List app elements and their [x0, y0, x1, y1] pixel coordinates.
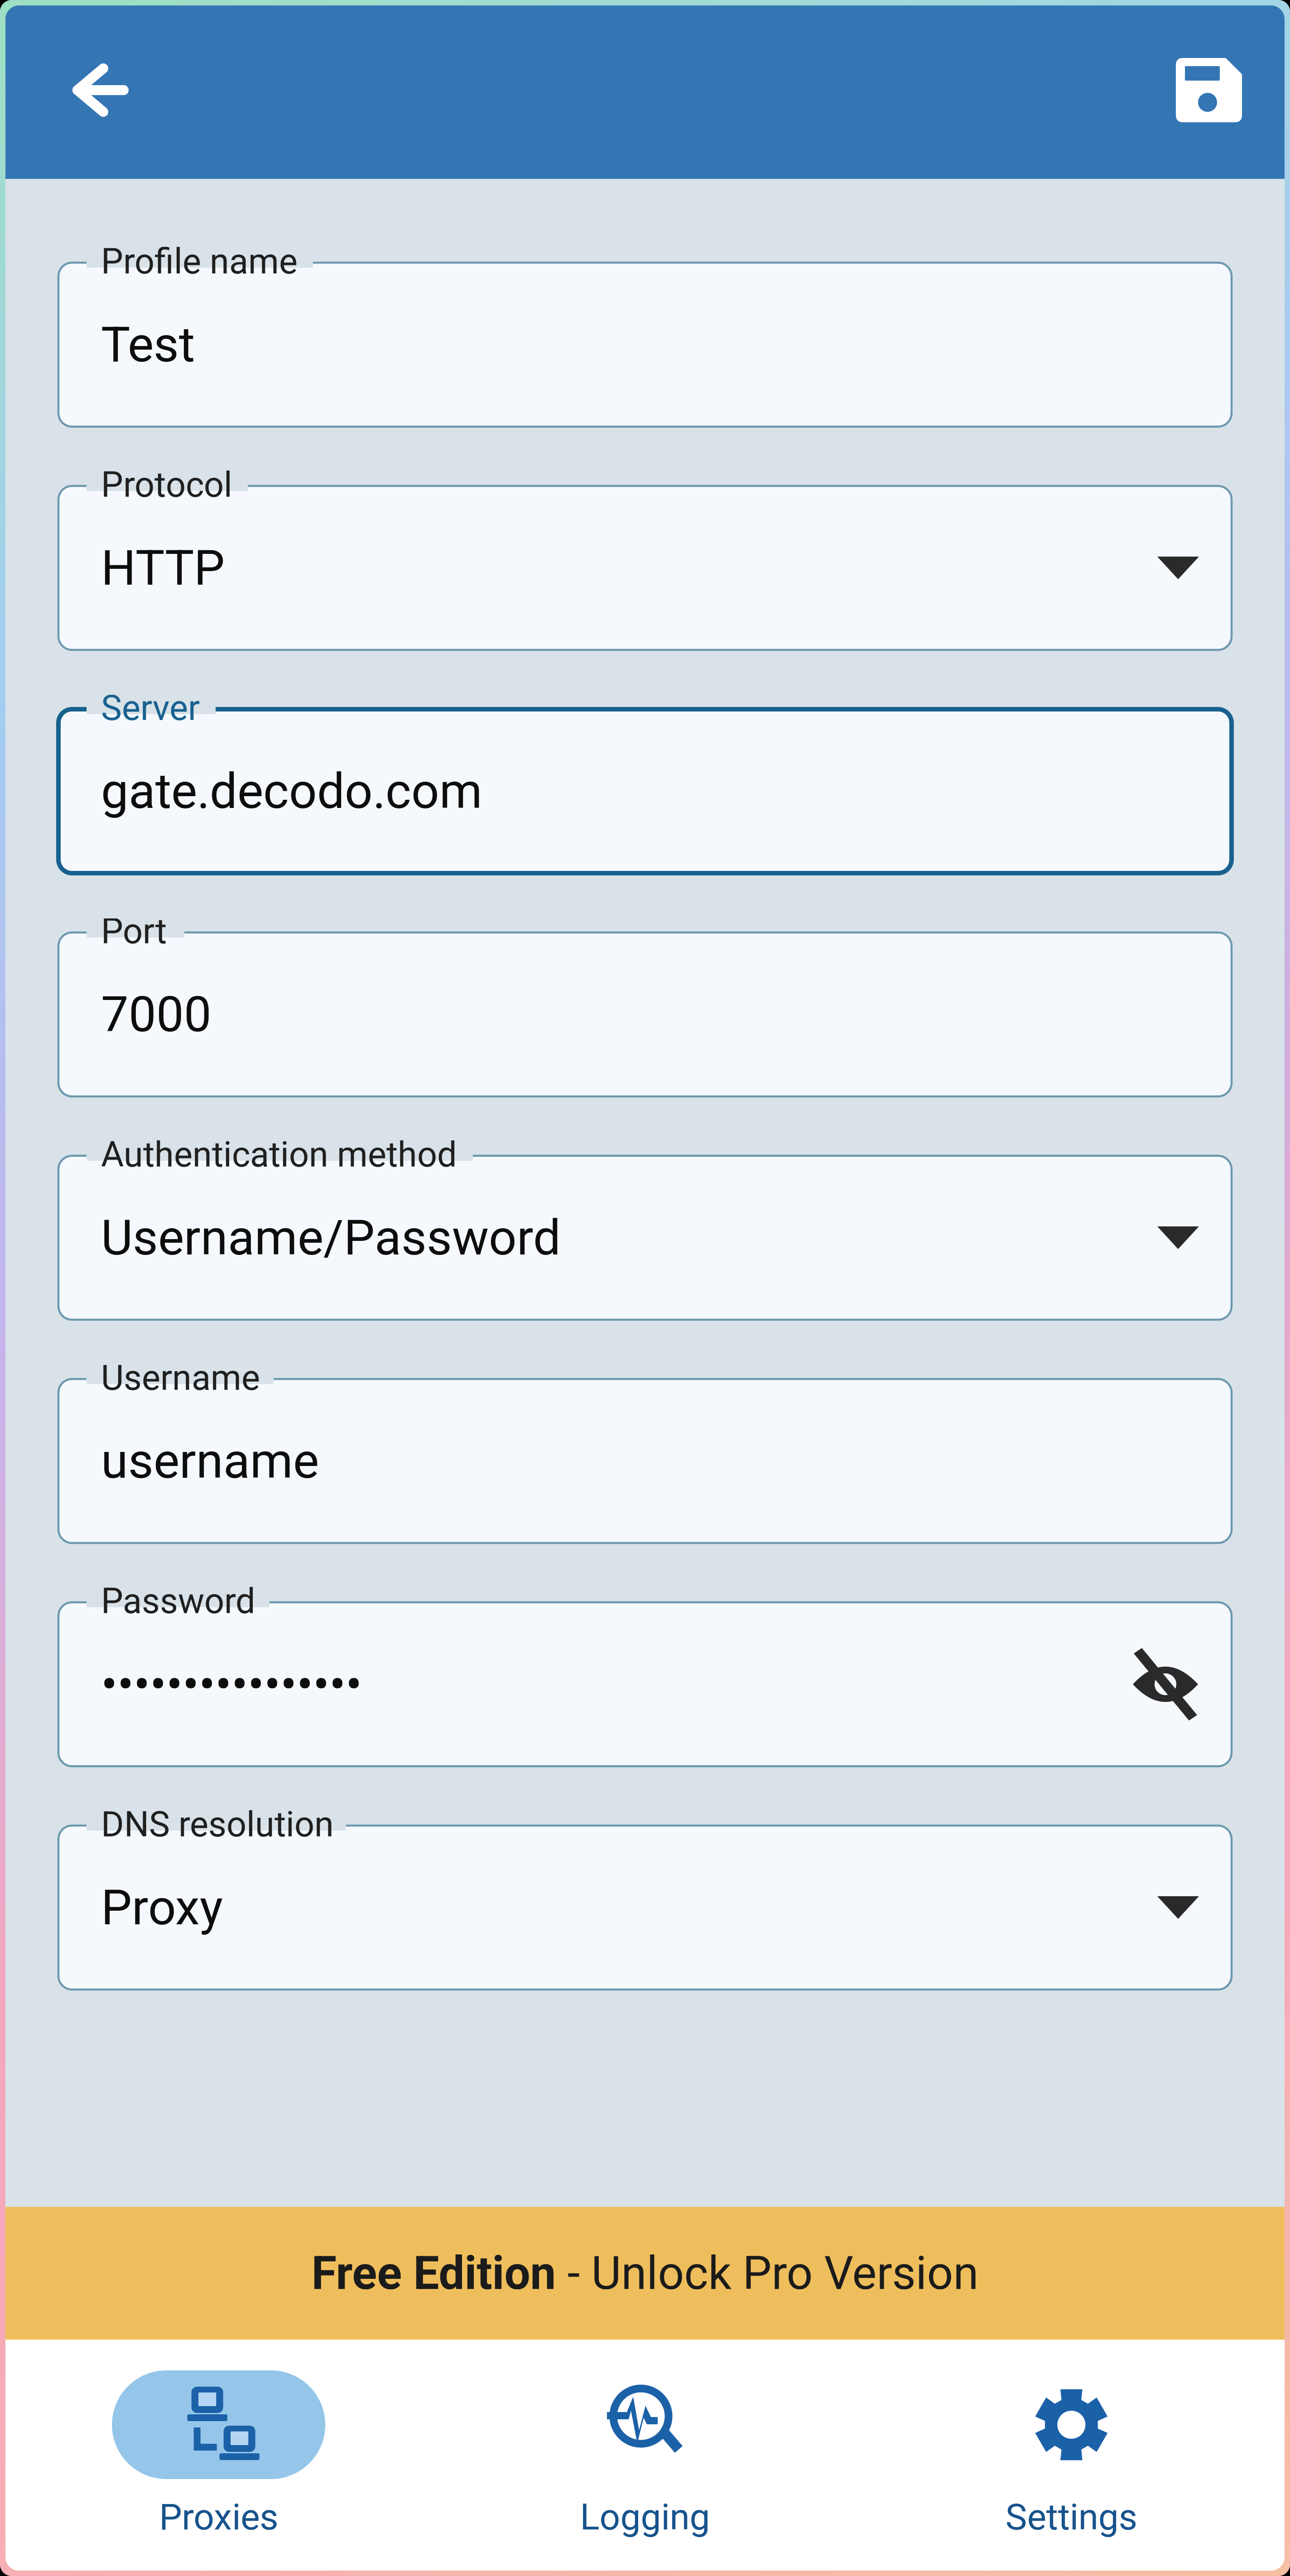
- staticText: Port: [101, 911, 167, 952]
- staticText: Protocol: [101, 464, 232, 505]
- staticText: DNS resolution: [101, 1804, 334, 1845]
- staticText: Server: [101, 687, 200, 729]
- staticText: gate.decodo.com: [101, 763, 482, 820]
- staticText: 7000: [101, 986, 212, 1043]
- staticText: Logging: [580, 2496, 710, 2538]
- button[interactable]: Logging: [432, 2340, 858, 2571]
- staticText: - Unlock Pro Version: [556, 2246, 979, 2300]
- staticText: Authentication method: [101, 1134, 457, 1175]
- button[interactable]: Save: [1153, 34, 1265, 146]
- button[interactable]: Proxies: [5, 2340, 432, 2571]
- staticText: Password: [101, 1581, 255, 1622]
- staticText: Test: [101, 316, 195, 373]
- staticText: Profile name: [101, 241, 298, 282]
- staticText: Free Edition: [311, 2246, 556, 2300]
- staticText: Settings: [1005, 2496, 1137, 2538]
- staticText: Proxy: [101, 1879, 223, 1936]
- staticText: username: [101, 1432, 319, 1490]
- button[interactable]: Settings: [858, 2340, 1285, 2571]
- staticText: Username: [101, 1357, 260, 1398]
- staticText: ••••••••••••••••: [101, 1656, 362, 1713]
- staticText: Proxies: [159, 2496, 278, 2538]
- staticText: HTTP: [101, 539, 225, 597]
- button[interactable]: Free Edition: [5, 2207, 1285, 2340]
- button[interactable]: Back: [44, 34, 157, 146]
- staticText: Username/Password: [101, 1209, 561, 1266]
